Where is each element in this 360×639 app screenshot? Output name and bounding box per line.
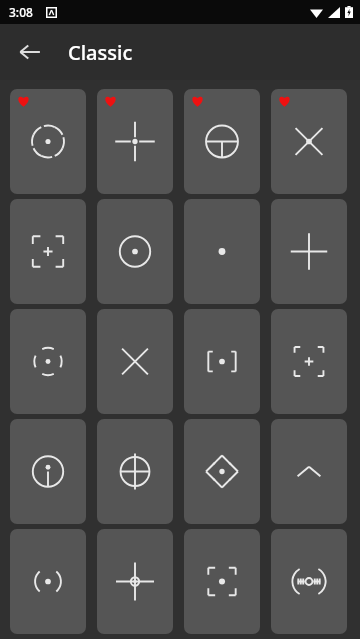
button[interactable]: Circle dot reticle — [97, 199, 173, 304]
staticText: 3:08 — [9, 4, 33, 20]
button[interactable]: Arc reticle — [10, 309, 86, 414]
button[interactable]: Diagonal X reticle — [97, 309, 173, 414]
button[interactable]: Ring cross reticle — [97, 529, 173, 634]
button[interactable]: Cross reticle — [97, 89, 173, 194]
button[interactable]: Circle stem reticle — [10, 419, 86, 524]
button[interactable]: Corner cross reticle — [10, 199, 86, 304]
button[interactable]: Wing reticle — [271, 529, 347, 634]
button[interactable]: Bracket reticle — [184, 309, 260, 414]
button[interactable]: Crosshair circle reticle — [97, 419, 173, 524]
button[interactable]: Dashed ring reticle — [10, 89, 86, 194]
button[interactable]: Frame cross reticle — [271, 309, 347, 414]
button[interactable]: Focus frame reticle — [184, 529, 260, 634]
staticText: Classic — [68, 39, 133, 66]
button[interactable]: Paren dot reticle — [10, 529, 86, 634]
button[interactable]: Back — [8, 30, 52, 74]
button[interactable]: Dot reticle — [184, 199, 260, 304]
button[interactable]: Scope reticle — [184, 89, 260, 194]
button[interactable]: Chevron ring reticle — [184, 419, 260, 524]
button[interactable]: Chevron reticle — [271, 419, 347, 524]
button[interactable]: Thin cross reticle — [271, 199, 347, 304]
button[interactable]: X reticle — [271, 89, 347, 194]
